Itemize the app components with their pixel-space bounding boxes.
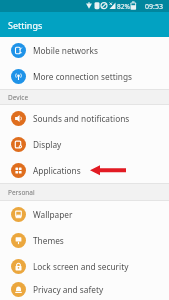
button[interactable]: Mobile networks: [0, 37, 169, 63]
button[interactable]: Themes: [0, 227, 169, 253]
staticText: Settings: [8, 19, 43, 31]
staticText: Wallpaper: [33, 209, 73, 220]
staticText: Lock screen and security: [33, 261, 129, 272]
staticText: Mobile networks: [33, 45, 98, 56]
staticText: Privacy and safety: [33, 284, 104, 295]
staticText: 09:53: [145, 2, 163, 12]
button[interactable]: Applications: [0, 157, 169, 183]
button[interactable]: Lock screen and security: [0, 253, 169, 279]
staticText: Sounds and notifications: [33, 113, 130, 124]
button[interactable]: Privacy and safety: [0, 279, 169, 300]
button[interactable]: Wallpaper: [0, 201, 169, 227]
button[interactable]: Display: [0, 131, 169, 157]
staticText: More connection settings: [33, 71, 132, 82]
staticText: 82%: [117, 2, 130, 11]
button[interactable]: More connection settings: [0, 63, 169, 89]
button[interactable]: Sounds and notifications: [0, 105, 169, 131]
staticText: Personal: [8, 188, 35, 197]
staticText: Themes: [33, 235, 64, 246]
staticText: Display: [33, 139, 62, 150]
staticText: Applications: [33, 165, 81, 176]
staticText: Device: [8, 93, 29, 102]
